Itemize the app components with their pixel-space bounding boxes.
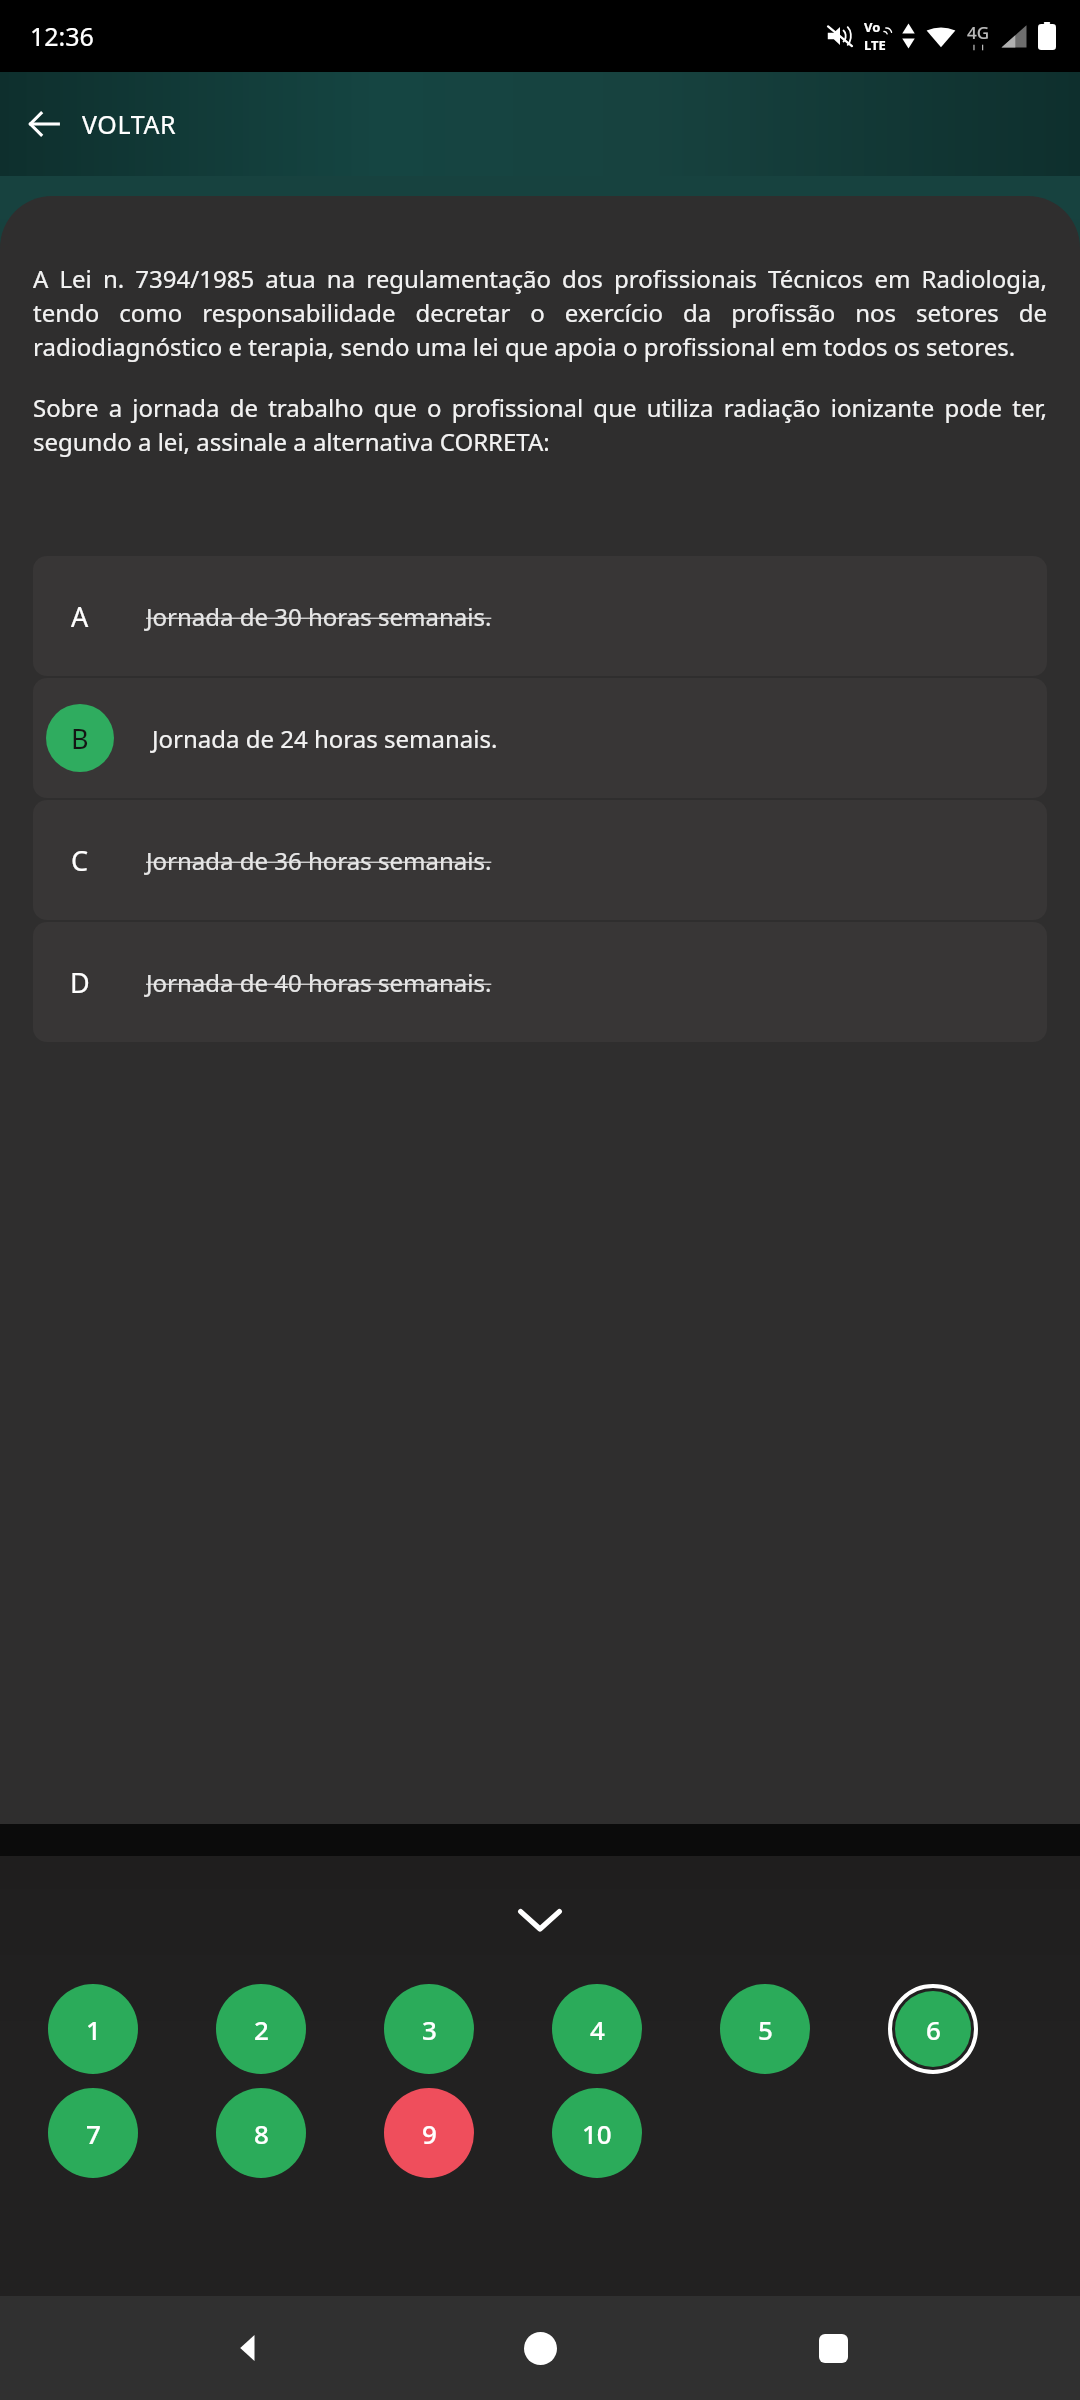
button[interactable]: 5 xyxy=(720,1984,810,2074)
staticText: Jornada de 30 horas semanais. xyxy=(146,600,492,633)
button[interactable]: A xyxy=(33,556,1047,676)
staticText: VOLTAR xyxy=(82,107,177,141)
staticText: 5 xyxy=(758,2012,773,2047)
staticText: 1 xyxy=(86,2012,101,2047)
button[interactable]: 2 xyxy=(216,1984,306,2074)
staticText: LTE xyxy=(864,36,886,54)
staticText: 7 xyxy=(86,2116,101,2151)
staticText: Vo xyxy=(864,18,881,36)
button[interactable]: 8 xyxy=(216,2088,306,2178)
staticText: 10 xyxy=(582,2116,612,2151)
button[interactable]: Voltar xyxy=(201,2302,293,2394)
button[interactable]: 3 xyxy=(384,1984,474,2074)
staticText: Sobre a jornada de trabalho que o profis… xyxy=(33,391,1047,458)
button[interactable]: VOLTAR xyxy=(0,94,203,154)
button[interactable]: Recentes xyxy=(787,2302,879,2394)
button[interactable]: B xyxy=(33,678,1047,798)
staticText: 9 xyxy=(422,2116,437,2151)
staticText: Jornada de 40 horas semanais. xyxy=(146,966,492,999)
button[interactable]: 10 xyxy=(552,2088,642,2178)
staticText: A xyxy=(71,598,89,635)
staticText: 3 xyxy=(422,2012,437,2047)
staticText: 4G xyxy=(967,21,990,44)
staticText: 4 xyxy=(590,2012,605,2047)
staticText: Jornada de 24 horas semanais. xyxy=(152,722,498,755)
button[interactable]: 6 xyxy=(895,1991,971,2067)
staticText: 2 xyxy=(254,2012,269,2047)
button[interactable]: D xyxy=(33,922,1047,1042)
staticText: D xyxy=(70,964,90,1001)
button[interactable]: C xyxy=(33,800,1047,920)
staticText: A Lei n. 7394/1985 atua na regulamentaçã… xyxy=(33,262,1047,363)
button[interactable]: 7 xyxy=(48,2088,138,2178)
staticText: Jornada de 36 horas semanais. xyxy=(146,844,492,877)
staticText: 8 xyxy=(254,2116,269,2151)
button[interactable]: 4 xyxy=(552,1984,642,2074)
button[interactable]: 9 xyxy=(384,2088,474,2178)
button[interactable]: Início xyxy=(494,2302,586,2394)
staticText: B xyxy=(71,720,89,757)
staticText: 12:36 xyxy=(30,19,94,53)
staticText: C xyxy=(71,842,89,879)
button[interactable]: Recolher xyxy=(0,1856,1080,1984)
staticText: 6 xyxy=(926,2012,941,2047)
button[interactable]: 1 xyxy=(48,1984,138,2074)
